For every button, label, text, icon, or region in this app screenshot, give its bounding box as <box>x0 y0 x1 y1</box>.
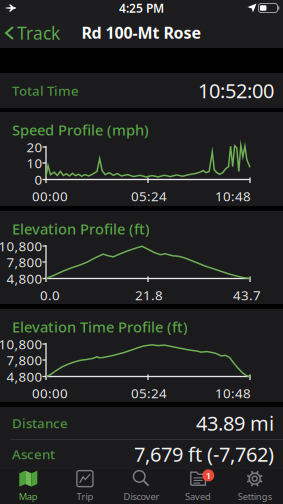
staticText: 10,800 <box>0 237 42 255</box>
staticText: 4,800 <box>6 270 42 287</box>
staticText: 10,800 <box>0 335 42 353</box>
staticText: 7,679 ft (-7,762) <box>134 441 274 467</box>
staticText: Rd 100-Mt Rose <box>81 22 201 43</box>
button[interactable]: Saved <box>170 468 226 504</box>
staticText: Trip <box>76 490 93 503</box>
staticText: 43.89 mi <box>196 410 274 436</box>
staticText: Elevation Profile (ft) <box>12 219 150 238</box>
staticText: Track <box>17 21 60 44</box>
staticText: 20 <box>26 138 42 156</box>
staticText: 10:52:00 <box>198 77 274 104</box>
button[interactable]: Trip <box>57 468 113 504</box>
staticText: 21.8 <box>135 286 163 304</box>
button[interactable]: Discover <box>113 468 170 504</box>
staticText: Speed Profile (mph) <box>12 120 149 139</box>
staticText: 0 <box>34 171 42 188</box>
staticText: Elevation Time Profile (ft) <box>12 317 188 336</box>
staticText: Map <box>19 490 38 503</box>
staticText: Discover <box>123 490 159 503</box>
staticText: Ascent <box>12 445 55 463</box>
staticText: 05:24 <box>131 384 167 402</box>
staticText: Distance <box>12 414 68 432</box>
button[interactable]: Map <box>0 468 57 504</box>
staticText: 1 <box>206 469 211 482</box>
staticText: 7,800 <box>6 351 42 369</box>
staticText: Saved <box>185 490 211 503</box>
staticText: 10:48 <box>215 187 251 205</box>
staticText: 0.0 <box>40 286 60 304</box>
staticText: 4,800 <box>6 368 42 385</box>
button[interactable]: Settings <box>226 468 283 504</box>
staticText: 00:00 <box>32 384 68 402</box>
staticText: 10:48 <box>215 384 251 402</box>
staticText: 05:24 <box>131 187 167 205</box>
staticText: 10 <box>26 154 42 172</box>
staticText: 7,800 <box>6 253 42 271</box>
staticText: Settings <box>238 490 272 503</box>
staticText: 4:25 PM <box>119 0 164 16</box>
button[interactable]: Track <box>0 16 60 49</box>
staticText: 43.7 <box>233 286 261 304</box>
staticText: 00:00 <box>32 187 68 205</box>
staticText: Total Time <box>12 82 79 99</box>
